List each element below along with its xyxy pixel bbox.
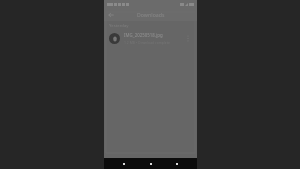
button[interactable]: IMG_20250518.jpg [104,30,197,46]
button[interactable]: Recents [170,158,184,169]
staticText: Yesterday [109,23,129,29]
button[interactable]: Back [117,158,131,169]
button[interactable]: Navigate up [104,8,117,21]
staticText: IMG_20250518.jpg [124,32,163,38]
staticText: Downloads [137,11,165,18]
button[interactable]: Home [144,158,158,169]
